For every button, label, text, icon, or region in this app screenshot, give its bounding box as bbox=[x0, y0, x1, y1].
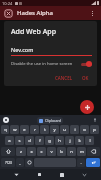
button[interactable]: t bbox=[40, 125, 49, 134]
staticText: r bbox=[34, 127, 36, 133]
staticText: n bbox=[70, 149, 73, 155]
staticText: x bbox=[30, 149, 33, 155]
staticText: l bbox=[89, 138, 91, 144]
button[interactable]: f bbox=[35, 136, 44, 145]
button[interactable]: Voice input bbox=[92, 117, 98, 123]
staticText: w bbox=[13, 127, 17, 133]
button[interactable]: x bbox=[27, 147, 36, 156]
staticText: d bbox=[28, 138, 31, 144]
button[interactable]: Keyboard settings bbox=[3, 117, 9, 123]
button[interactable]: CANCEL bbox=[52, 73, 76, 83]
button[interactable]: i bbox=[70, 125, 79, 134]
staticText: Hades Alpha bbox=[17, 9, 54, 17]
staticText: a bbox=[8, 138, 11, 144]
button[interactable]: More options bbox=[87, 8, 97, 18]
staticText: Add Web App bbox=[11, 27, 56, 37]
button[interactable]: s bbox=[15, 136, 24, 145]
button[interactable]: p bbox=[90, 125, 99, 134]
button[interactable]: r bbox=[30, 125, 39, 134]
button[interactable]: Emoji bbox=[25, 158, 33, 167]
button[interactable]: j bbox=[65, 136, 74, 145]
button[interactable]: Add web app bbox=[80, 100, 94, 114]
staticText: o bbox=[83, 127, 86, 133]
button[interactable]: Shift bbox=[1, 147, 15, 156]
button[interactable]: h bbox=[55, 136, 64, 145]
button[interactable]: Disable the use in home screen toggle bbox=[81, 61, 92, 67]
button[interactable]: k bbox=[75, 136, 84, 145]
staticText: OK bbox=[82, 75, 89, 81]
staticText: y bbox=[53, 127, 56, 133]
button[interactable]: c bbox=[37, 147, 46, 156]
button[interactable]: Back bbox=[11, 169, 22, 180]
button[interactable]: Backspace bbox=[87, 147, 100, 156]
button[interactable]: Disable the use in home screen bbox=[11, 61, 92, 67]
button[interactable]: Clipboard bbox=[37, 117, 63, 124]
staticText: , bbox=[19, 160, 21, 166]
button[interactable]: w bbox=[10, 125, 19, 134]
staticText: . bbox=[80, 160, 82, 166]
button[interactable]: Home bbox=[34, 169, 45, 180]
staticText: p bbox=[93, 127, 96, 133]
button[interactable]: . bbox=[77, 158, 85, 167]
button[interactable]: o bbox=[80, 125, 89, 134]
staticText: Clipboard bbox=[45, 118, 61, 123]
button[interactable]: OK bbox=[79, 73, 92, 83]
staticText: u bbox=[63, 127, 66, 133]
staticText: z bbox=[20, 149, 22, 155]
staticText: q bbox=[4, 127, 7, 133]
button[interactable]: m bbox=[77, 147, 86, 156]
button[interactable]: a bbox=[5, 136, 14, 145]
button[interactable]: ?123 bbox=[1, 158, 15, 167]
staticText: c bbox=[40, 149, 43, 155]
staticText: g bbox=[48, 138, 51, 144]
staticText: ?123 bbox=[5, 161, 12, 165]
button[interactable]: Recents bbox=[56, 169, 67, 180]
staticText: h bbox=[58, 138, 61, 144]
staticText: m bbox=[80, 149, 84, 155]
button[interactable]: z bbox=[16, 147, 26, 156]
button[interactable]: , bbox=[16, 158, 24, 167]
staticText: s bbox=[18, 138, 21, 144]
staticText: f bbox=[39, 138, 41, 144]
other: App logo bbox=[4, 9, 13, 18]
staticText: Disable the use in home screen bbox=[11, 61, 79, 67]
button[interactable]: e bbox=[20, 125, 29, 134]
button[interactable]: v bbox=[47, 147, 56, 156]
button[interactable]: n bbox=[67, 147, 76, 156]
button[interactable]: Nev.com bbox=[11, 46, 92, 56]
button[interactable]: Hide keyboard bbox=[79, 169, 90, 180]
staticText: b bbox=[60, 149, 63, 155]
staticText: e bbox=[23, 127, 26, 133]
staticText: i bbox=[74, 127, 76, 133]
staticText: 10:24 bbox=[2, 1, 13, 6]
button[interactable]: g bbox=[45, 136, 54, 145]
button[interactable]: y bbox=[50, 125, 59, 134]
staticText: t bbox=[44, 127, 46, 133]
staticText: v bbox=[50, 149, 53, 155]
button[interactable]: Enter bbox=[86, 158, 100, 167]
staticText: j bbox=[69, 138, 71, 144]
button[interactable]: u bbox=[60, 125, 69, 134]
button[interactable]: b bbox=[57, 147, 66, 156]
button[interactable]: q bbox=[1, 125, 9, 134]
staticText: CANCEL bbox=[55, 75, 73, 81]
staticText: Nev.com bbox=[11, 46, 34, 53]
staticText: k bbox=[78, 138, 81, 144]
button[interactable]: l bbox=[85, 136, 94, 145]
button[interactable]: d bbox=[25, 136, 34, 145]
